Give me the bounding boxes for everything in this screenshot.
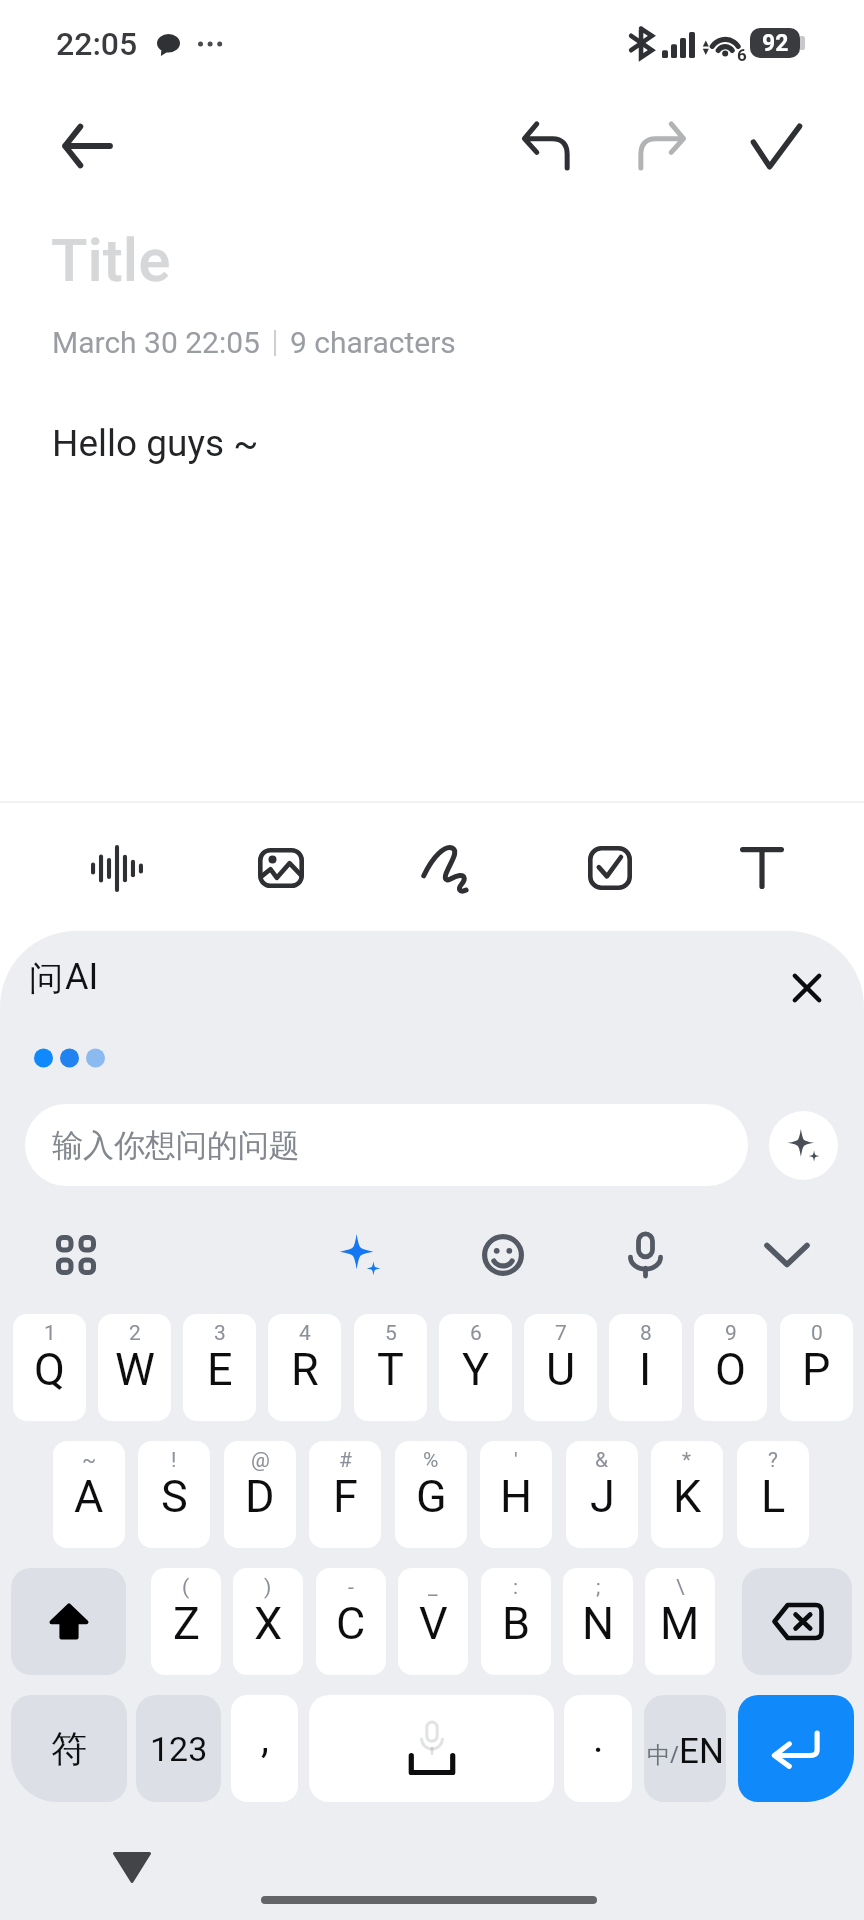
staticText: & xyxy=(595,1448,609,1473)
button[interactable]: Done xyxy=(728,100,824,192)
button[interactable]: Comma xyxy=(231,1695,298,1802)
button[interactable]: ? xyxy=(737,1441,809,1548)
staticText: 6 xyxy=(737,45,747,65)
button[interactable]: Backspace xyxy=(742,1568,852,1675)
button[interactable]: AI assistant xyxy=(314,1210,406,1300)
button[interactable]: Enter xyxy=(738,1695,854,1802)
button[interactable]: Back xyxy=(38,100,136,192)
button[interactable]: ' xyxy=(480,1441,552,1548)
staticText: 22:05 xyxy=(56,25,138,63)
button[interactable]: Period xyxy=(564,1695,632,1802)
button[interactable]: # xyxy=(309,1441,381,1548)
staticText: Q xyxy=(34,1343,65,1396)
staticText: Hello guys ~ xyxy=(52,422,259,465)
button[interactable]: ~ xyxy=(53,1441,125,1548)
staticText: V xyxy=(419,1597,448,1650)
button[interactable]: ( xyxy=(151,1568,221,1675)
button[interactable]: Space xyxy=(309,1695,554,1802)
button[interactable]: 6 xyxy=(439,1314,512,1421)
button[interactable]: Language xyxy=(644,1695,726,1802)
button[interactable]: Close xyxy=(760,942,854,1034)
staticText: 7 xyxy=(555,1321,567,1346)
staticText: 6 xyxy=(470,1321,482,1346)
button[interactable]: 3 xyxy=(183,1314,256,1421)
button[interactable]: & xyxy=(566,1441,638,1548)
button[interactable]: Keyboard layouts xyxy=(30,1210,122,1300)
button[interactable]: 2 xyxy=(98,1314,171,1421)
button[interactable]: 8 xyxy=(609,1314,682,1421)
staticText: : xyxy=(513,1575,519,1600)
staticText: 3 xyxy=(214,1321,226,1346)
button[interactable]: Checklist xyxy=(548,810,672,926)
staticText: 2 xyxy=(129,1321,141,1346)
staticText: C xyxy=(336,1597,366,1650)
button[interactable]: Handwriting xyxy=(382,810,506,926)
staticText: \ xyxy=(676,1575,685,1600)
staticText: * xyxy=(682,1448,692,1473)
button[interactable]: 输入你想问的问题 xyxy=(25,1104,748,1186)
button[interactable]: Voice input xyxy=(599,1210,691,1300)
staticText: % xyxy=(423,1448,439,1473)
staticText: _ xyxy=(428,1575,438,1600)
staticText: 9 characters xyxy=(290,325,456,360)
button[interactable]: Image xyxy=(219,810,343,926)
button[interactable]: Hide keyboard xyxy=(82,1832,182,1902)
staticText: Z xyxy=(173,1597,200,1650)
button[interactable]: Numbers xyxy=(136,1695,221,1802)
staticText: I xyxy=(639,1343,652,1396)
staticText: O xyxy=(715,1343,746,1396)
staticText: X xyxy=(254,1597,283,1650)
staticText: 9 xyxy=(725,1321,737,1346)
staticText: A xyxy=(74,1470,104,1523)
button[interactable]: 4 xyxy=(268,1314,341,1421)
staticText: J xyxy=(590,1470,615,1523)
button[interactable]: 0 xyxy=(780,1314,853,1421)
staticText: 问 xyxy=(29,957,63,1000)
staticText: W xyxy=(115,1343,155,1396)
staticText: 123 xyxy=(150,1729,208,1769)
staticText: Y xyxy=(462,1343,490,1396)
button[interactable]: % xyxy=(395,1441,467,1548)
button[interactable]: ! xyxy=(138,1441,210,1548)
staticText: 输入你想问的问题 xyxy=(52,1126,300,1165)
staticText: P xyxy=(802,1343,831,1396)
staticText: , xyxy=(261,1715,269,1762)
staticText: H xyxy=(500,1470,533,1523)
staticText: . xyxy=(593,1715,604,1762)
button[interactable]: Symbols xyxy=(11,1695,127,1802)
button[interactable]: 5 xyxy=(354,1314,427,1421)
button[interactable]: ) xyxy=(233,1568,303,1675)
button[interactable]: * xyxy=(651,1441,723,1548)
button[interactable]: : xyxy=(481,1568,551,1675)
button[interactable]: 9 xyxy=(694,1314,767,1421)
staticText: R xyxy=(291,1343,319,1396)
staticText: - xyxy=(348,1575,354,1600)
staticText: 5 xyxy=(385,1321,397,1346)
button[interactable]: Audio xyxy=(55,810,179,926)
staticText: ! xyxy=(171,1448,177,1473)
button[interactable]: _ xyxy=(398,1568,468,1675)
button[interactable]: 7 xyxy=(524,1314,597,1421)
button[interactable]: Undo xyxy=(498,100,594,192)
staticText: ( xyxy=(182,1575,190,1600)
button[interactable]: Collapse keyboard xyxy=(741,1210,833,1300)
staticText: Title xyxy=(51,225,171,295)
staticText: F xyxy=(333,1470,358,1523)
staticText: T xyxy=(377,1343,404,1396)
staticText: # xyxy=(339,1448,352,1473)
staticText: 4 xyxy=(299,1321,311,1346)
button[interactable]: Shift xyxy=(11,1568,126,1675)
button[interactable]: Text style xyxy=(700,810,824,926)
button[interactable]: 1 xyxy=(13,1314,86,1421)
button[interactable]: \ xyxy=(645,1568,715,1675)
staticText: E xyxy=(207,1343,233,1396)
staticText: M xyxy=(660,1597,700,1650)
staticText: U xyxy=(546,1343,576,1396)
button[interactable]: @ xyxy=(224,1441,296,1548)
button[interactable]: - xyxy=(316,1568,386,1675)
button[interactable]: Emoji xyxy=(457,1210,549,1300)
button[interactable]: Redo xyxy=(614,100,710,192)
button[interactable]: Ask AI xyxy=(769,1111,838,1180)
button[interactable]: ; xyxy=(563,1568,633,1675)
staticText: AI xyxy=(65,956,99,998)
